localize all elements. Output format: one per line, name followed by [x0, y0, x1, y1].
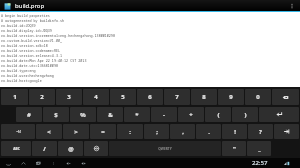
- button[interactable]: 7: [164, 89, 190, 105]
- button[interactable]: ?: [248, 124, 273, 139]
- button[interactable]: Volume up: [79, 159, 87, 167]
- button[interactable]: Tab: [274, 124, 299, 139]
- staticText: ro.build.display.id=JDQ39: [1, 28, 52, 33]
- staticText: _: [258, 145, 261, 153]
- staticText: ro.build.version.release=4.3.1: [1, 53, 63, 58]
- button[interactable]: Menu: [49, 159, 57, 167]
- staticText: ,: [182, 128, 184, 136]
- button[interactable]: 4: [83, 89, 109, 105]
- button[interactable]: !: [222, 124, 247, 139]
- button[interactable]: (: [205, 107, 231, 122]
- button[interactable]: /: [32, 141, 57, 156]
- button[interactable]: ": [222, 141, 246, 156]
- staticText: # begin build properties: [1, 13, 50, 18]
- button[interactable]: Volume down: [64, 159, 72, 167]
- staticText: 1: [13, 93, 17, 101]
- staticText: 8: [202, 93, 206, 101]
- staticText: +: [189, 111, 193, 119]
- staticText: 0: [256, 93, 260, 101]
- button[interactable]: <: [36, 124, 62, 139]
- staticText: 5: [121, 93, 125, 101]
- button[interactable]: ;: [144, 124, 169, 139]
- button[interactable]: Back: [4, 159, 12, 167]
- button[interactable]: .: [196, 124, 221, 139]
- staticText: ro.build.user=hechengzhong: [1, 73, 54, 78]
- button[interactable]: App icon: [3, 2, 11, 10]
- staticText: -: [163, 111, 165, 119]
- button[interactable]: 3: [56, 89, 82, 105]
- staticText: ro.custom.build.version=V1.00_: [1, 38, 63, 43]
- button[interactable]: ~\{: [1, 124, 35, 139]
- button[interactable]: ABC: [1, 141, 31, 156]
- staticText: 2: [40, 93, 44, 101]
- staticText: # autogenerated by buildinfo.sh: [1, 18, 65, 23]
- staticText: ro.build.date.utc=1366810098: [1, 63, 58, 68]
- button[interactable]: 0: [245, 89, 271, 105]
- staticText: ro.build.id=JDQ39: [1, 23, 36, 28]
- button[interactable]: 2: [29, 89, 55, 105]
- staticText: @: [68, 145, 74, 153]
- staticText: ;: [156, 128, 158, 136]
- button[interactable]: Change keyboard: [84, 141, 108, 156]
- staticText: ro.build.host=google: [1, 78, 42, 83]
- button[interactable]: 5: [110, 89, 136, 105]
- staticText: =: [101, 128, 105, 136]
- staticText: ?: [259, 128, 262, 136]
- staticText: 6: [148, 93, 152, 101]
- button[interactable]: Home: [19, 159, 27, 167]
- staticText: >: [74, 128, 78, 136]
- staticText: $: [54, 111, 58, 119]
- button[interactable]: _: [247, 141, 271, 156]
- button[interactable]: -: [151, 107, 177, 122]
- button[interactable]: &: [97, 107, 123, 122]
- staticText: ro.build.version.codename=REL: [1, 48, 60, 53]
- button[interactable]: 9: [218, 89, 244, 105]
- staticText: ABC: [13, 147, 20, 151]
- staticText: 7: [175, 93, 179, 101]
- staticText: /: [43, 145, 46, 153]
- staticText: QWERTY: [158, 147, 172, 151]
- staticText: ro.build.version.incremental=eng.hecheng…: [1, 33, 115, 38]
- staticText: 4: [94, 93, 98, 101]
- button[interactable]: ): [232, 107, 258, 122]
- button[interactable]: =: [90, 124, 116, 139]
- staticText: !: [234, 128, 236, 136]
- button[interactable]: :: [117, 124, 143, 139]
- staticText: ro.build.version.sdk=18: [1, 43, 48, 48]
- staticText: (: [217, 111, 220, 119]
- button[interactable]: 8: [191, 89, 217, 105]
- staticText: *: [135, 111, 139, 119]
- staticText: &: [108, 111, 113, 119]
- button[interactable]: @: [58, 141, 83, 156]
- button[interactable]: +: [178, 107, 204, 122]
- staticText: build.prop: [15, 2, 45, 10]
- staticText: 22:57: [252, 159, 268, 167]
- staticText: 9: [229, 93, 233, 101]
- button[interactable]: #: [16, 107, 42, 122]
- staticText: #: [27, 111, 31, 119]
- staticText: .: [208, 128, 210, 136]
- button[interactable]: QWERTY: [109, 141, 221, 156]
- staticText: %: [80, 111, 86, 119]
- button[interactable]: %: [70, 107, 96, 122]
- staticText: ro.build.type=eng: [1, 68, 36, 73]
- button[interactable]: >: [63, 124, 89, 139]
- button[interactable]: ,: [170, 124, 195, 139]
- button[interactable]: 6: [137, 89, 163, 105]
- staticText: 3: [67, 93, 71, 101]
- staticText: ro.build.date=Mon Apr 22 19:40:12 CST 20…: [1, 58, 87, 63]
- staticText: ": [233, 145, 236, 153]
- staticText: ~\{: [16, 130, 21, 134]
- button[interactable]: *: [124, 107, 150, 122]
- button[interactable]: Enter: [259, 107, 299, 122]
- staticText: :: [129, 128, 131, 136]
- staticText: <: [47, 128, 51, 136]
- button[interactable]: 1: [1, 89, 28, 105]
- button[interactable]: Backspace: [272, 89, 299, 105]
- button[interactable]: More options: [287, 0, 297, 11]
- staticText: ): [244, 111, 247, 119]
- button[interactable]: $: [43, 107, 69, 122]
- button[interactable]: Recents: [34, 159, 42, 167]
